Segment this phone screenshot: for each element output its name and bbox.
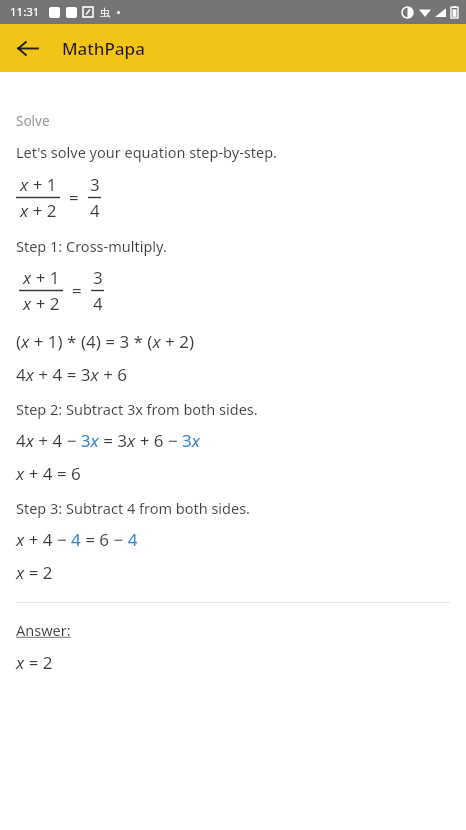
staticText: = bbox=[69, 186, 79, 209]
staticText: 3 bbox=[93, 266, 103, 289]
staticText: x + 4 − 4 = 6 − 4 bbox=[16, 528, 138, 551]
staticText: 虫 bbox=[100, 6, 110, 19]
staticText: = bbox=[72, 279, 82, 302]
staticText: (x + 1) * (4) = 3 * (x + 2) bbox=[16, 330, 195, 353]
staticText: Answer: bbox=[16, 620, 71, 640]
staticText: x + 2 bbox=[23, 292, 60, 315]
staticText: x = 2 bbox=[16, 561, 53, 584]
staticText: x + 1 bbox=[23, 266, 60, 289]
staticText: Step 2: Subtract 3x from both sides. bbox=[16, 399, 258, 419]
staticText: Step 1: Cross-multiply. bbox=[16, 236, 167, 256]
staticText: 4x + 4 − 3x = 3x + 6 − 3x bbox=[16, 429, 201, 452]
staticText: x + 1 bbox=[20, 173, 57, 196]
staticText: x + 4 = 6 bbox=[16, 462, 81, 485]
staticText: MathPapa bbox=[62, 37, 145, 60]
staticText: 4 bbox=[90, 199, 100, 222]
staticText: Let's solve your equation step-by-step. bbox=[16, 142, 277, 162]
staticText: x + 2 bbox=[20, 199, 57, 222]
staticText: Step 3: Subtract 4 from both sides. bbox=[16, 498, 250, 518]
staticText: Solve bbox=[16, 112, 50, 130]
staticText: x = 2 bbox=[16, 651, 53, 674]
staticText: 11:31 bbox=[10, 4, 40, 20]
staticText: 4 bbox=[93, 292, 103, 315]
button[interactable]: Back bbox=[6, 27, 48, 69]
staticText: 4x + 4 = 3x + 6 bbox=[16, 363, 128, 386]
staticText: 3 bbox=[90, 173, 100, 196]
